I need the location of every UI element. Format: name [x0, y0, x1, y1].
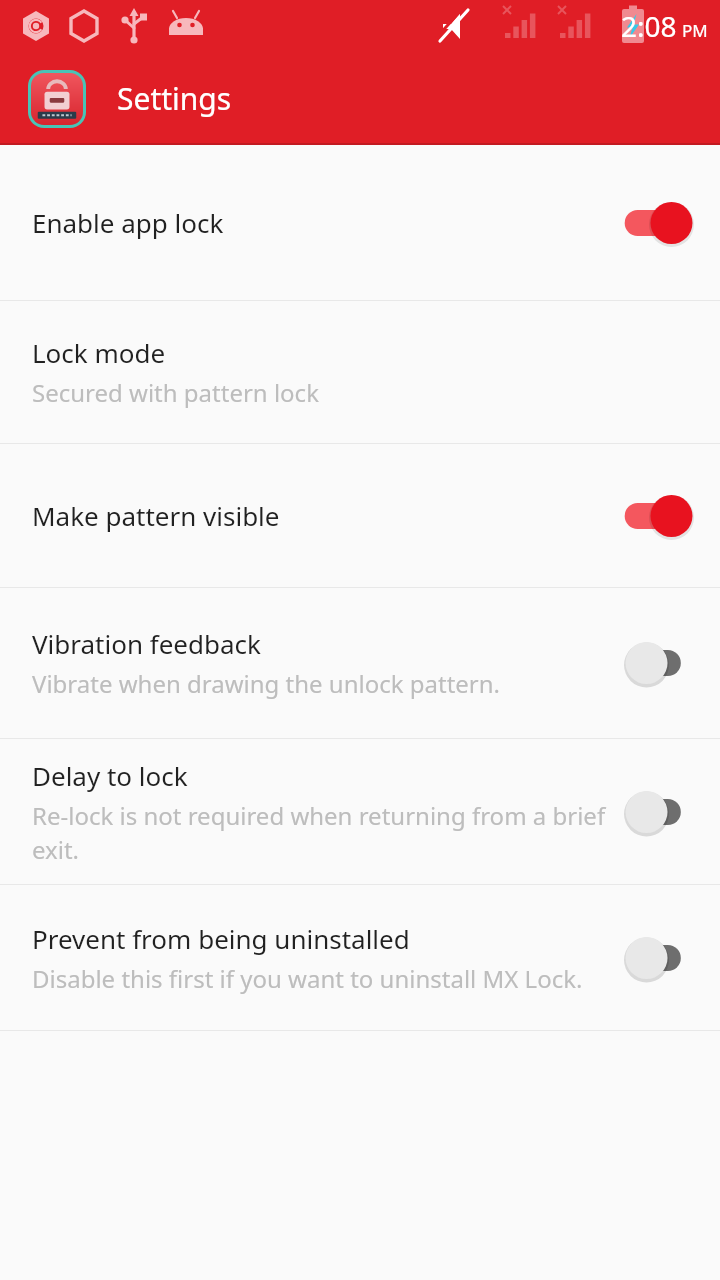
button[interactable]: Toggle off [620, 782, 698, 842]
staticText: Delay to lock [32, 758, 188, 793]
button[interactable]: Vibration feedback [0, 588, 720, 738]
staticText: 2:08 [621, 7, 677, 45]
staticText: Make pattern visible [32, 498, 280, 533]
staticText: Settings [117, 78, 232, 119]
staticText: Vibrate when drawing the unlock pattern. [32, 667, 501, 700]
staticText: Lock mode [32, 335, 166, 370]
staticText: Secured with pattern lock [32, 376, 319, 409]
staticText: Enable app lock [32, 205, 224, 240]
button[interactable]: Toggle on [620, 193, 698, 253]
staticText: PM [682, 19, 708, 42]
staticText: Disable this first if you want to uninst… [32, 962, 583, 995]
button[interactable]: Toggle off [620, 633, 698, 693]
button[interactable]: Toggle on [620, 486, 698, 546]
button[interactable]: Enable app lock [0, 145, 720, 300]
button[interactable]: Delay to lock [0, 739, 720, 884]
button[interactable]: Toggle off [620, 928, 698, 988]
button[interactable]: Prevent from being uninstalled [0, 885, 720, 1030]
button[interactable]: Lock mode [0, 301, 720, 443]
staticText: Re-lock is not required when returning f… [32, 799, 606, 866]
button[interactable]: Make pattern visible [0, 444, 720, 587]
staticText: Prevent from being uninstalled [32, 921, 410, 956]
staticText: Vibration feedback [32, 626, 261, 661]
